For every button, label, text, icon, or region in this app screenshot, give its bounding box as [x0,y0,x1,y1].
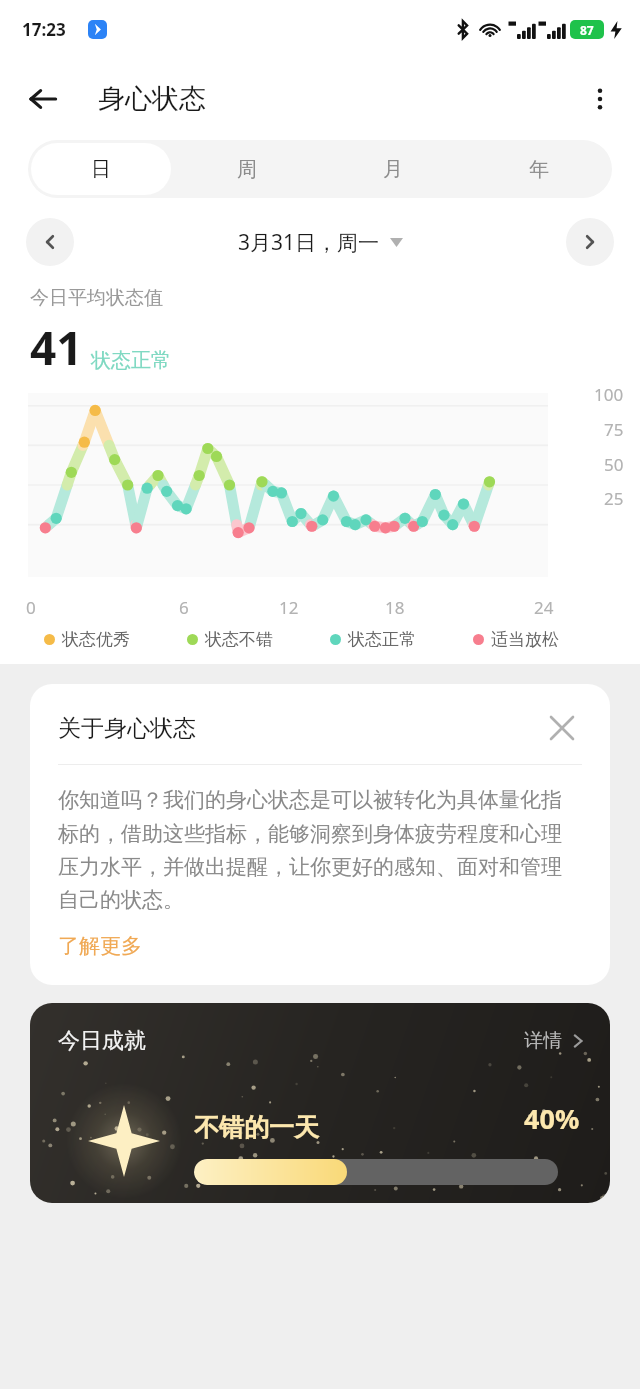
staticText: 日 [91,157,111,182]
staticText: 100 [594,383,624,406]
staticText: 25 [604,487,624,510]
staticText: 24 [534,596,554,619]
staticText: 0 [26,596,36,619]
staticText: 适当放松 [491,629,559,650]
staticText: 3月31日，周一 [238,228,380,257]
staticText: 今日成就 [58,1027,524,1055]
button[interactable]: Close [542,708,582,748]
staticText: 50 [604,453,624,476]
staticText: 状态正常 [348,629,416,650]
staticText: 详情 [524,1029,562,1053]
button[interactable]: 周 [177,143,317,195]
button[interactable]: 日 [31,143,171,195]
staticText: 40% [524,1100,580,1137]
staticText: 41 [30,316,83,379]
staticText: 75 [604,418,624,441]
staticText: 月 [383,157,403,182]
button[interactable]: Previous day [26,218,74,266]
button[interactable]: 月 [323,143,463,195]
staticText: 周 [237,157,257,182]
staticText: 你知道吗？我们的身心状态是可以被转化为具体量化指标的，借助这些指标，能够洞察到身… [58,787,582,913]
button[interactable]: Next day [566,218,614,266]
staticText: 状态不错 [205,629,273,650]
button[interactable]: 今日成就 [30,1003,610,1203]
button[interactable]: 了解更多 [58,933,142,959]
button[interactable]: Back [18,74,68,124]
staticText: 87 [580,22,594,38]
staticText: 年 [529,157,549,182]
staticText: 状态优秀 [62,629,130,650]
staticText: 6 [179,596,189,619]
button[interactable]: 3月31日，周一 [238,228,403,257]
staticText: 18 [385,596,405,619]
staticText: 不错的一天 [194,1112,319,1143]
button[interactable]: 年 [469,143,609,195]
staticText: 12 [279,596,299,619]
staticText: 了解更多 [58,933,142,959]
staticText: 身心状态 [98,82,206,116]
staticText: 17:23 [22,18,66,41]
staticText: 关于身心状态 [58,714,542,743]
staticText: 今日平均状态值 [30,286,163,310]
button[interactable]: More options [576,75,624,123]
staticText: 状态正常 [91,348,171,373]
